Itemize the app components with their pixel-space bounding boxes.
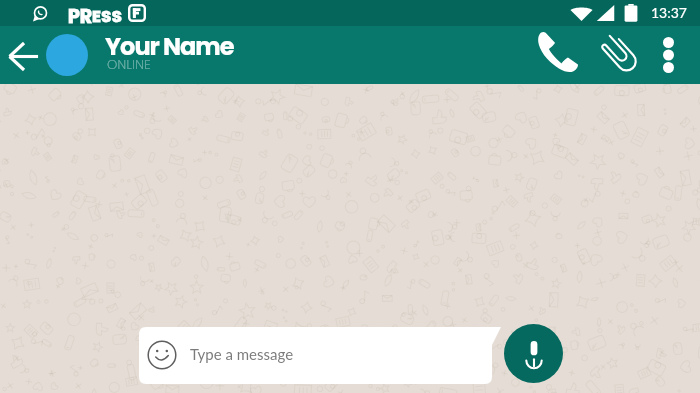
button[interactable]: Record voice message <box>504 324 563 383</box>
staticText: ESS <box>92 5 123 28</box>
button[interactable]: Back <box>0 32 46 78</box>
button[interactable]: Contact photo <box>46 34 88 76</box>
staticText: PR <box>68 3 92 29</box>
staticText: Type a message <box>190 345 294 363</box>
button[interactable]: Voice call <box>532 27 584 79</box>
button[interactable]: Type a message <box>139 327 501 384</box>
staticText: Your Name <box>105 30 234 64</box>
button[interactable]: Attach <box>594 28 646 80</box>
button[interactable]: More options <box>651 32 685 78</box>
staticText: ONLINE <box>107 55 151 73</box>
staticText: 13:37 <box>651 4 687 21</box>
